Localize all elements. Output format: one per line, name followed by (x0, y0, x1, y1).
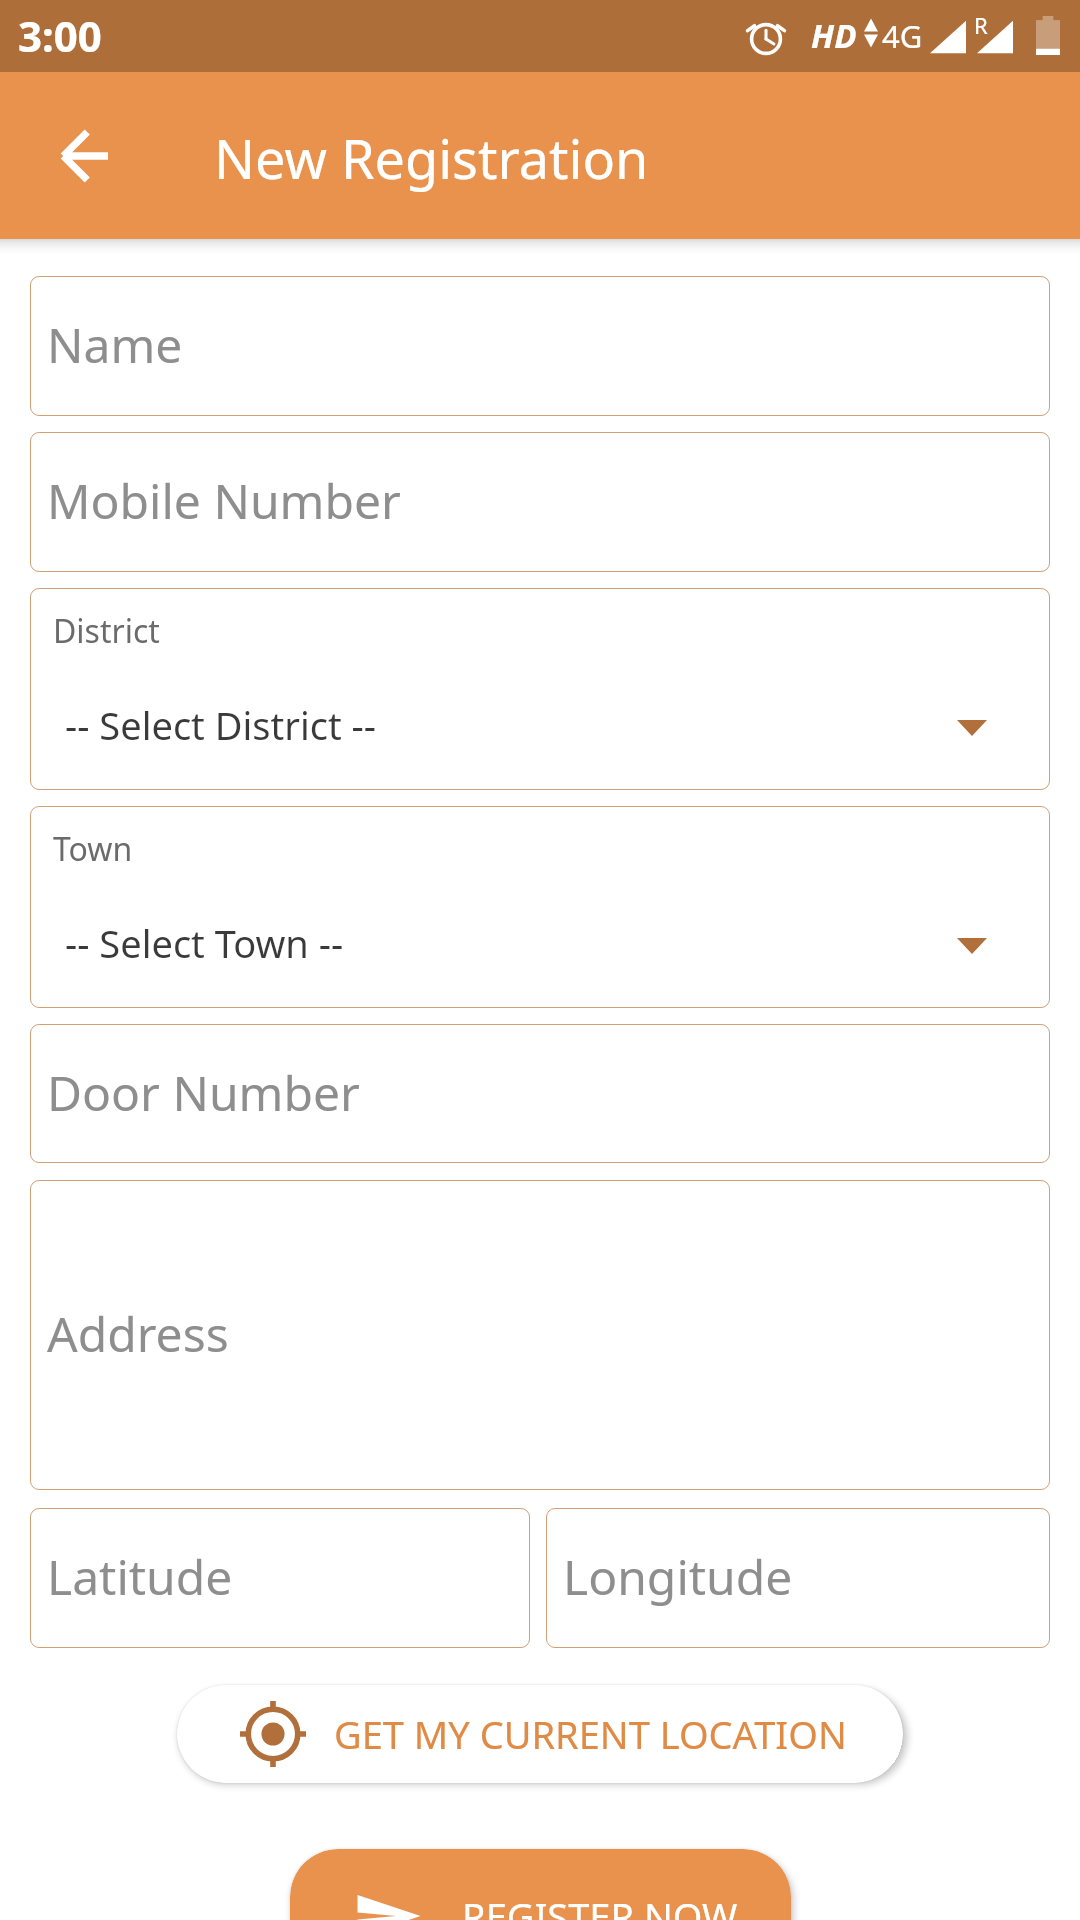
button[interactable]: Door Number (30, 1024, 1050, 1163)
staticText: REGISTER NOW (462, 1890, 738, 1920)
button[interactable]: GET MY CURRENT LOCATION (177, 1685, 903, 1783)
staticText: HD (811, 13, 857, 58)
staticText: Name (47, 312, 183, 377)
staticText: Address (47, 1301, 229, 1366)
button[interactable]: District (30, 588, 1050, 790)
button[interactable]: Town (30, 806, 1050, 1008)
staticText: -- Select Town -- (65, 917, 344, 969)
staticText: Town (53, 827, 133, 871)
button[interactable]: Back (24, 96, 144, 216)
staticText: R (974, 10, 988, 40)
staticText: GET MY CURRENT LOCATION (334, 1708, 847, 1760)
staticText: 4G (882, 15, 923, 57)
staticText: Longitude (563, 1544, 793, 1609)
button[interactable]: Name (30, 276, 1050, 416)
staticText: -- Select District -- (65, 699, 376, 751)
button[interactable]: Latitude (30, 1508, 530, 1648)
staticText: Latitude (47, 1544, 233, 1609)
button[interactable]: Longitude (546, 1508, 1050, 1648)
button[interactable]: Mobile Number (30, 432, 1050, 572)
button[interactable]: Address (30, 1180, 1050, 1490)
staticText: Door Number (47, 1060, 360, 1125)
staticText: District (53, 609, 160, 653)
staticText: 3:00 (18, 7, 102, 64)
staticText: Mobile Number (47, 468, 401, 533)
staticText: New Registration (214, 121, 649, 195)
button[interactable]: REGISTER NOW (290, 1849, 791, 1920)
